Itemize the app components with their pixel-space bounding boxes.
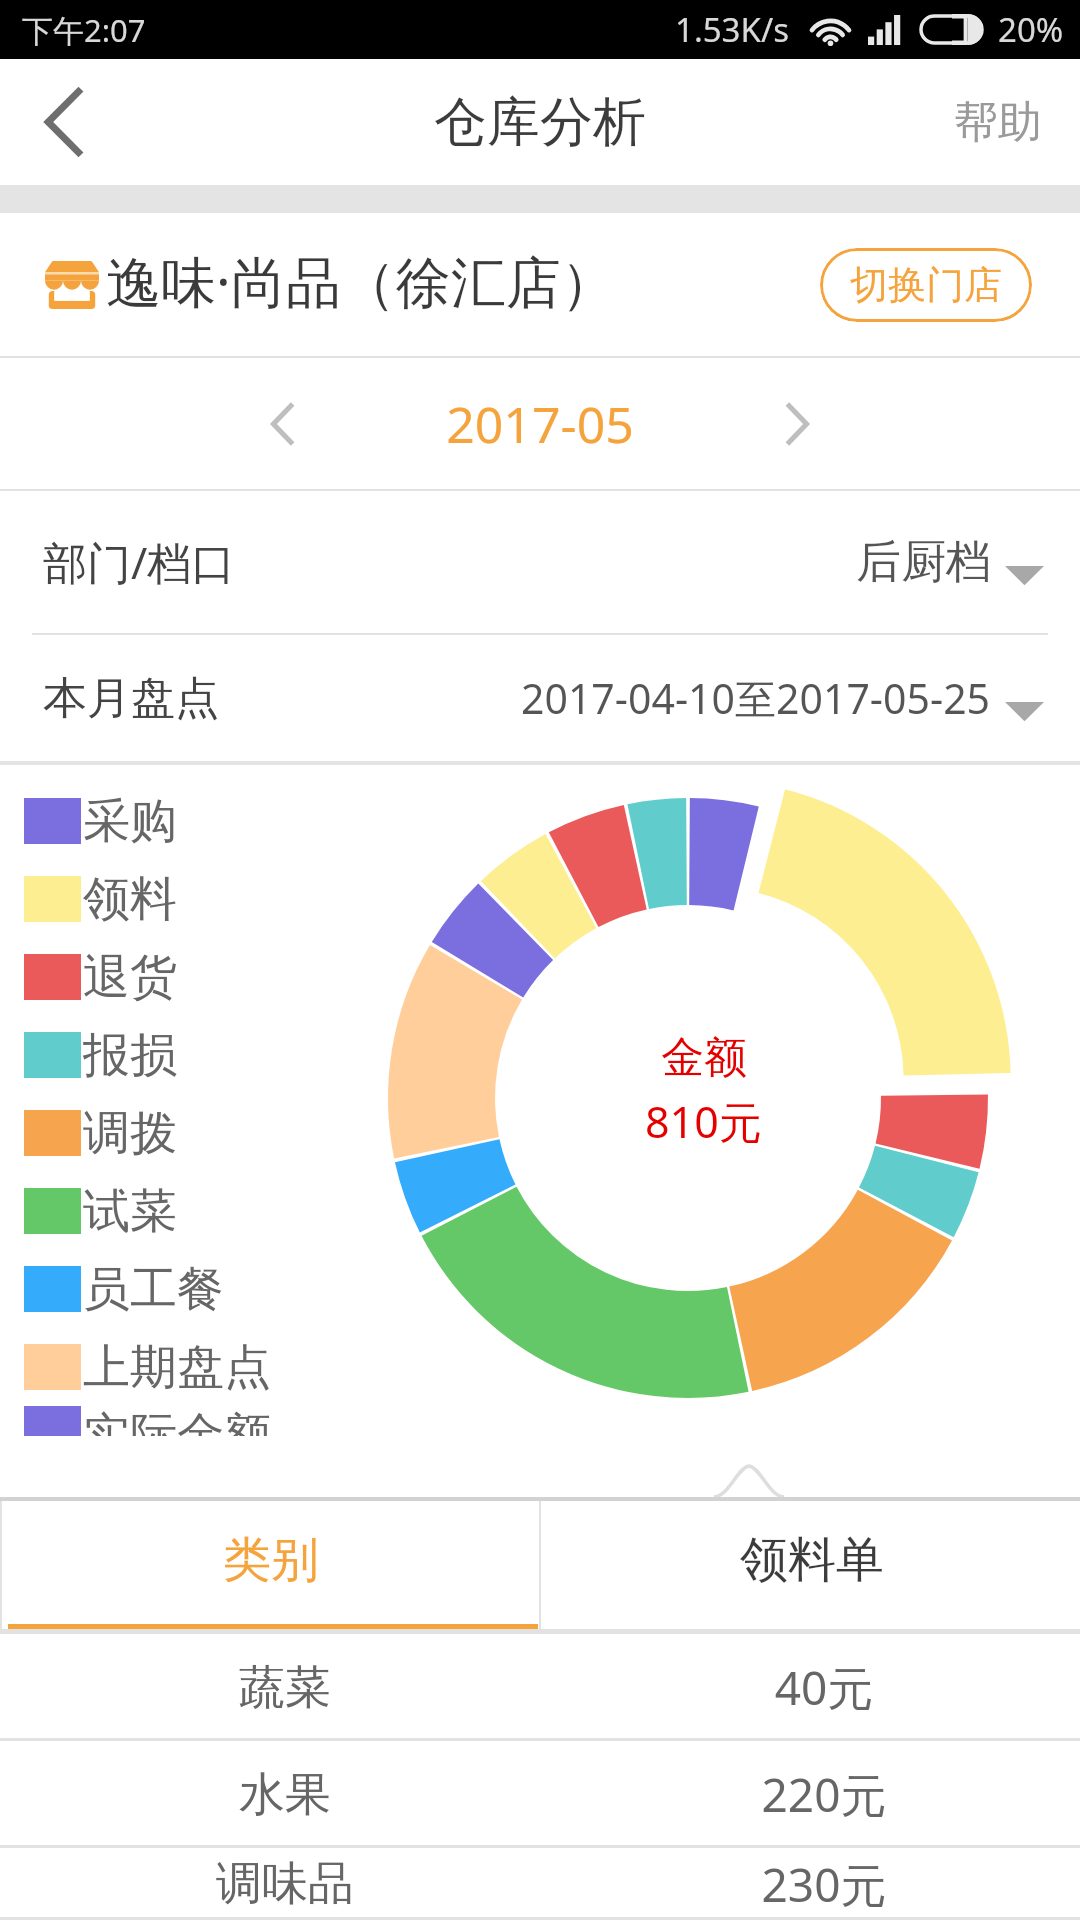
staticText: 810元 [645,1092,762,1151]
button[interactable]: Back [0,59,130,185]
staticText: 报损 [83,1026,177,1085]
staticText: 金额 [661,1031,747,1085]
staticText: 1.53K/s [675,7,789,52]
staticText: 类别 [223,1530,319,1590]
staticText: 员工餐 [83,1260,224,1319]
staticText: 仓库分析 [434,89,646,156]
staticText: 领料单 [740,1530,884,1590]
staticText: 切换门店 [850,261,1002,309]
staticText: 实际金额 [83,1406,271,1436]
button[interactable]: 类别 [0,1497,541,1629]
staticText: 上期盘点 [83,1338,271,1397]
button[interactable]: 部门/档口 [0,491,1080,633]
staticText: 水果 [185,1766,385,1824]
staticText: 采购 [83,792,177,851]
button[interactable]: 水果 [0,1741,1080,1848]
button[interactable]: 领料单 [541,1497,1080,1629]
staticText: 2017-05 [416,390,664,458]
staticText: 后厨档 [856,534,991,591]
button[interactable]: Next month [664,364,930,484]
staticText: 220元 [704,1763,944,1826]
staticText: 部门/档口 [43,532,236,592]
staticText: 20% [998,7,1064,52]
staticText: 领料 [83,870,177,929]
button[interactable]: 蔬菜 [0,1634,1080,1741]
staticText: 本月盘点 [43,671,219,726]
staticText: 2017-04-10至2017-05-25 [521,670,991,726]
staticText: 退货 [83,948,177,1007]
button[interactable]: 切换门店 [820,248,1032,322]
button[interactable]: 调味品 [0,1848,1080,1920]
staticText: 调味品 [185,1855,385,1913]
staticText: 调拨 [83,1104,177,1163]
staticText: 帮助 [954,95,1042,150]
staticText: 40元 [704,1656,944,1719]
button[interactable]: 本月盘点 [0,635,1080,761]
staticText: 下午2:07 [22,9,146,51]
button[interactable]: Previous month [150,364,416,484]
button[interactable]: 帮助 [954,59,1080,185]
staticText: 230元 [704,1853,944,1916]
staticText: 逸味·尚品（徐汇店） [106,243,616,318]
staticText: 试菜 [83,1182,177,1241]
staticText: 蔬菜 [185,1659,385,1717]
